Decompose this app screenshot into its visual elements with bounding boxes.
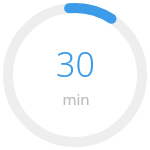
button[interactable]: 30 minute timer <box>0 0 150 150</box>
staticText: min <box>62 89 90 109</box>
staticText: 30 <box>56 41 95 87</box>
